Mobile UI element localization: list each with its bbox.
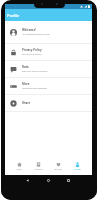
staticText: Our Terms & Policies [22,53,42,56]
button[interactable]: Welcome! [5,21,92,43]
other: Home [47,179,50,182]
staticText: Profile [74,168,81,171]
staticText: Rate your app on Playstore [22,70,48,73]
staticText: Favorite [54,168,62,171]
staticText: More [22,82,30,86]
staticText: Category [34,168,43,171]
button[interactable]: More [5,78,92,94]
staticText: Rate [22,65,29,69]
button[interactable]: Privacy Policy [5,44,92,60]
other: Recent apps [67,179,70,182]
staticText: Not registered? Register Now [22,33,50,36]
button[interactable]: Favorite [53,161,63,172]
staticText: Privacy Policy [22,48,42,52]
button[interactable]: Home [15,161,23,172]
staticText: Home [16,168,22,171]
staticText: Welcome! [22,28,36,32]
staticText: More apps from developer [22,87,47,90]
button[interactable]: Category [33,161,44,172]
staticText: Profile [7,13,20,18]
other: Back [26,179,29,182]
button[interactable]: Profile [73,161,82,172]
button[interactable]: Rate [5,61,92,77]
staticText: Share [22,101,31,105]
button[interactable]: Share [5,95,92,111]
